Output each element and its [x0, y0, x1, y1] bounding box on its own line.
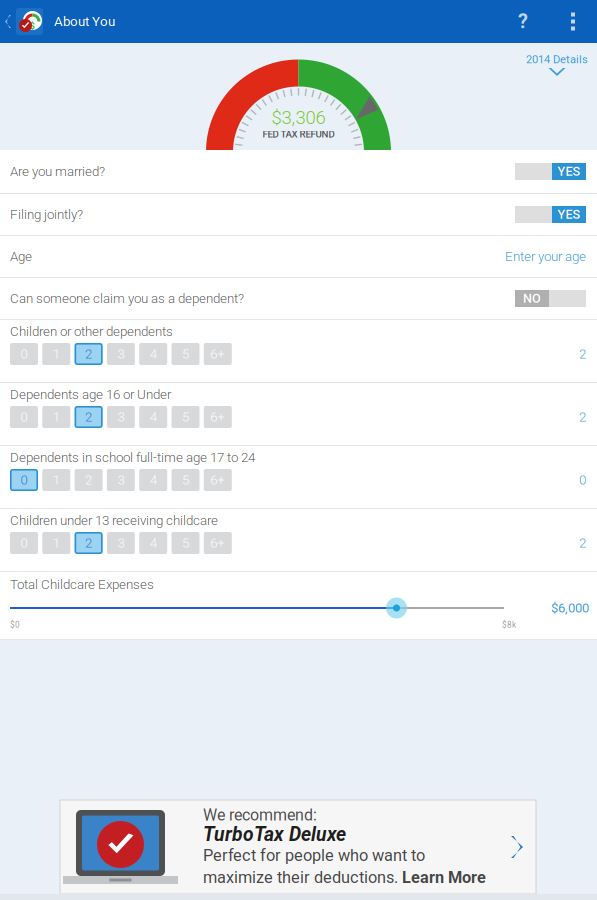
button[interactable]: 4 [139, 343, 167, 365]
button[interactable]: We recommend: [60, 800, 536, 894]
button[interactable]: 0 [10, 469, 38, 491]
button[interactable]: 5 [171, 406, 199, 428]
staticText: 1 [53, 409, 60, 425]
staticText: Can someone claim you as a dependent? [10, 291, 244, 306]
button[interactable]: YES [515, 163, 586, 180]
staticText: 4 [150, 409, 157, 425]
staticText: 4 [150, 346, 157, 362]
button[interactable]: More options [549, 0, 597, 43]
staticText: 2 [579, 409, 586, 425]
staticText: $6,000 [551, 600, 589, 616]
staticText: $3,306 [271, 107, 325, 129]
button[interactable]: 0 [10, 406, 38, 428]
button[interactable]: 2 [75, 343, 103, 365]
button[interactable]: YES [515, 206, 586, 223]
staticText: 2 [85, 409, 92, 425]
staticText: 2014 Details [526, 53, 588, 66]
staticText: $0 [10, 620, 20, 630]
staticText: 5 [182, 409, 189, 425]
staticText: 1 [53, 472, 60, 488]
staticText: 0 [20, 472, 27, 488]
button[interactable]: 4 [139, 469, 167, 491]
staticText: maximize their deductions. Learn More [203, 868, 486, 887]
staticText: 0 [20, 409, 27, 425]
staticText: $ [29, 20, 34, 31]
staticText: 3 [117, 346, 124, 362]
staticText: ? [518, 10, 528, 33]
button[interactable]: 6+ [204, 343, 232, 365]
staticText: 6+ [210, 409, 225, 425]
staticText: 5 [182, 472, 189, 488]
button[interactable]: 6+ [204, 406, 232, 428]
button[interactable]: Help [497, 0, 549, 43]
button[interactable]: 2 [75, 532, 103, 554]
button[interactable]: 5 [171, 532, 199, 554]
staticText: About You [54, 14, 115, 29]
staticText: 5 [182, 535, 189, 551]
staticText: 5 [182, 346, 189, 362]
button[interactable]: 6+ [204, 469, 232, 491]
staticText: 6+ [210, 346, 225, 362]
button[interactable]: 3 [107, 343, 135, 365]
staticText: Children or other dependents [10, 324, 173, 339]
staticText: 3 [117, 535, 124, 551]
button[interactable]: 6+ [204, 532, 232, 554]
staticText: NO [523, 291, 541, 306]
button[interactable]: NO [515, 290, 586, 307]
staticText: 3 [117, 472, 124, 488]
button[interactable]: 4 [139, 532, 167, 554]
staticText: 0 [20, 346, 27, 362]
button[interactable]: 3 [107, 469, 135, 491]
staticText: Are you married? [10, 164, 105, 179]
staticText: YES [557, 164, 580, 179]
button[interactable]: Back [0, 0, 43, 43]
button[interactable]: 5 [171, 469, 199, 491]
button[interactable]: 0 [10, 532, 38, 554]
button[interactable]: 1 [42, 406, 70, 428]
staticText: 2 [85, 472, 92, 488]
staticText: Filing jointly? [10, 207, 83, 222]
button[interactable]: 3 [107, 406, 135, 428]
staticText: Enter your age [505, 249, 586, 264]
button[interactable]: 2014 Details [526, 43, 597, 76]
staticText: 3 [117, 409, 124, 425]
button[interactable]: 2 [75, 406, 103, 428]
button[interactable]: 1 [42, 532, 70, 554]
staticText: 2 [579, 535, 586, 551]
staticText: Total Childcare Expenses [10, 577, 154, 592]
staticText: 1 [53, 346, 60, 362]
staticText: 2 [85, 346, 92, 362]
staticText: 6+ [210, 472, 225, 488]
staticText: 4 [150, 535, 157, 551]
button[interactable]: 4 [139, 406, 167, 428]
staticText: Children under 13 receiving childcare [10, 513, 218, 528]
button[interactable]: 3 [107, 532, 135, 554]
button[interactable]: About You [43, 0, 115, 43]
staticText: 1 [53, 535, 60, 551]
staticText: TurboTax Deluxe [203, 823, 346, 846]
staticText: We recommend: [203, 806, 317, 824]
staticText: YES [557, 207, 580, 222]
button[interactable]: 2 [75, 469, 103, 491]
staticText: Perfect for people who want to [203, 846, 425, 865]
button[interactable]: 1 [42, 469, 70, 491]
staticText: Age [10, 249, 32, 264]
button[interactable]: 5 [171, 343, 199, 365]
staticText: Dependents age 16 or Under [10, 387, 171, 402]
staticText: 2 [85, 535, 92, 551]
staticText: $8k [502, 620, 516, 630]
button[interactable]: 0 [10, 343, 38, 365]
staticText: 0 [20, 535, 27, 551]
staticText: 4 [150, 472, 157, 488]
staticText: FED TAX REFUND [262, 129, 334, 140]
staticText: 6+ [210, 535, 225, 551]
staticText: 0 [579, 472, 586, 488]
staticText: Dependents in school full-time age 17 to… [10, 450, 255, 465]
staticText: 2 [579, 346, 586, 362]
button[interactable]: 1 [42, 343, 70, 365]
button[interactable]: Enter your age [505, 249, 586, 264]
